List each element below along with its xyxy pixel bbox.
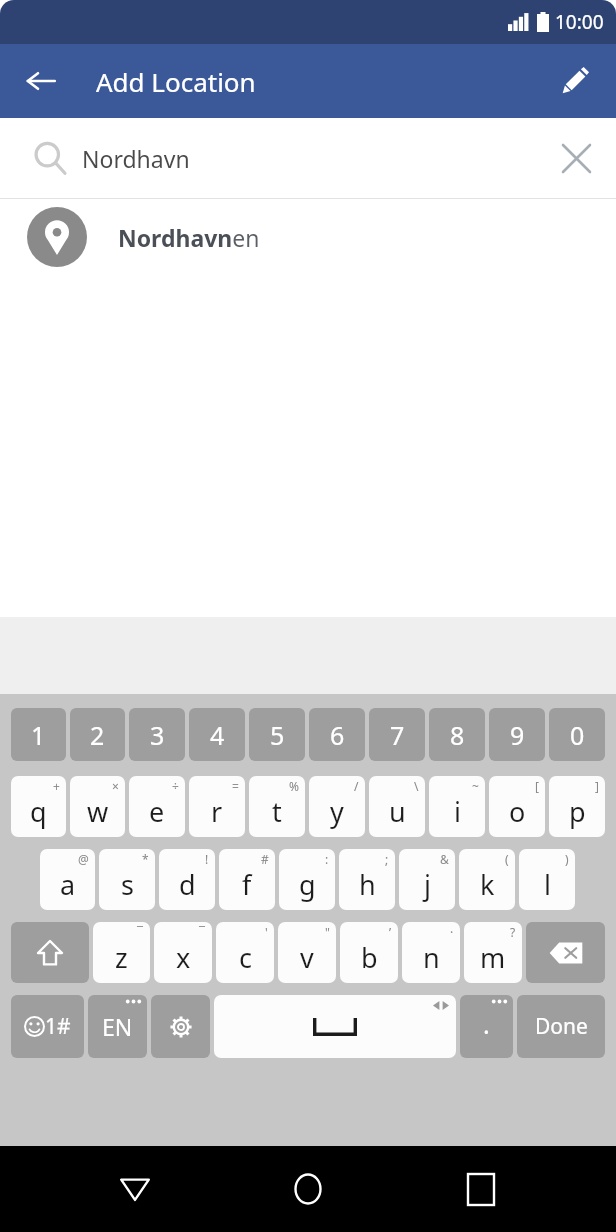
staticText: \ xyxy=(414,778,419,794)
staticText: ¯ xyxy=(199,924,206,940)
button[interactable]: ~ xyxy=(429,776,485,840)
staticText: EN xyxy=(102,1011,133,1042)
staticText: ( xyxy=(505,851,509,867)
staticText: * xyxy=(142,851,149,867)
button[interactable]: ; xyxy=(339,849,395,913)
staticText: Done xyxy=(535,1012,588,1041)
button[interactable]: Settings xyxy=(151,995,210,1061)
staticText: ) xyxy=(565,851,569,867)
staticText: . xyxy=(483,1007,490,1041)
button[interactable]: · xyxy=(402,922,460,986)
button[interactable]: 3 xyxy=(129,708,185,764)
staticText: & xyxy=(440,851,449,867)
button[interactable]: ¯ xyxy=(154,922,212,986)
staticText: Nordhavnen xyxy=(118,222,260,253)
button[interactable]: " xyxy=(278,922,336,986)
button[interactable]: 5 xyxy=(249,708,305,764)
button[interactable]: ? xyxy=(464,922,522,986)
staticText: × xyxy=(112,778,119,794)
button[interactable]: + xyxy=(11,776,66,840)
button[interactable]: ] xyxy=(549,776,605,840)
staticText: g xyxy=(299,866,316,903)
button[interactable]: ’ xyxy=(340,922,398,986)
staticText: ¯ xyxy=(137,924,144,940)
staticText: " xyxy=(325,924,330,940)
button[interactable]: % xyxy=(249,776,305,840)
button[interactable]: Back xyxy=(14,54,68,108)
button[interactable]: # xyxy=(219,849,275,913)
staticText: z xyxy=(115,939,128,976)
staticText: + xyxy=(53,778,60,794)
staticText: ; xyxy=(385,851,389,867)
button[interactable]: Home xyxy=(270,1151,346,1227)
staticText: t xyxy=(272,793,282,830)
staticText: 10:00 xyxy=(555,9,604,35)
button[interactable]: Edit xyxy=(548,54,602,108)
staticText: b xyxy=(361,939,378,976)
staticText: Nordhavn xyxy=(82,143,190,174)
staticText: h xyxy=(359,866,376,903)
staticText: : xyxy=(325,851,329,867)
button[interactable]: 7 xyxy=(369,708,425,764)
staticText: f xyxy=(242,866,252,903)
button[interactable]: Space xyxy=(214,995,456,1061)
button[interactable]: ÷ xyxy=(129,776,185,840)
button[interactable]: @ xyxy=(40,849,95,913)
button[interactable]: Shift xyxy=(11,922,89,986)
button[interactable]: Nordhavn xyxy=(0,118,616,198)
staticText: / xyxy=(354,778,359,794)
button[interactable]: 1 xyxy=(11,708,66,764)
button[interactable]: EN xyxy=(88,995,147,1061)
staticText: a xyxy=(60,866,76,903)
button[interactable]: & xyxy=(399,849,455,913)
button[interactable]: Recents xyxy=(443,1151,519,1227)
button[interactable]: Done xyxy=(517,995,605,1061)
button[interactable]: Back xyxy=(97,1151,173,1227)
staticText: m xyxy=(480,939,506,976)
button[interactable]: . xyxy=(460,995,513,1061)
staticText: ’ xyxy=(389,924,392,940)
button[interactable]: × xyxy=(70,776,125,840)
button[interactable]: 6 xyxy=(309,708,365,764)
staticText: 9 xyxy=(510,718,525,752)
staticText: r xyxy=(211,793,223,830)
button[interactable]: / xyxy=(309,776,365,840)
staticText: = xyxy=(232,778,239,794)
button[interactable]: 2 xyxy=(70,708,125,764)
staticText: n xyxy=(423,939,440,976)
staticText: 6 xyxy=(330,718,345,752)
staticText: 3 xyxy=(150,718,165,752)
staticText: j xyxy=(424,866,431,903)
staticText: 0 xyxy=(570,718,585,752)
staticText: x xyxy=(176,939,191,976)
staticText: @ xyxy=(78,851,89,867)
button[interactable]: 0 xyxy=(549,708,605,764)
button[interactable]: Emoji and symbols xyxy=(11,995,84,1061)
staticText: l xyxy=(544,866,551,903)
button[interactable]: = xyxy=(189,776,245,840)
staticText: k xyxy=(480,866,495,903)
button[interactable]: ' xyxy=(216,922,274,986)
button[interactable]: Backspace xyxy=(526,922,605,986)
staticText: 7 xyxy=(390,718,405,752)
staticText: Add Location xyxy=(96,64,256,99)
staticText: 8 xyxy=(450,718,465,752)
button[interactable]: [ xyxy=(489,776,545,840)
button[interactable]: 4 xyxy=(189,708,245,764)
staticText: 1# xyxy=(45,1012,71,1041)
button[interactable]: ¯ xyxy=(93,922,150,986)
staticText: p xyxy=(569,793,586,830)
button[interactable]: 9 xyxy=(489,708,545,764)
staticText: ? xyxy=(510,924,516,940)
button[interactable]: \ xyxy=(369,776,425,840)
button[interactable]: 8 xyxy=(429,708,485,764)
button[interactable]: ( xyxy=(459,849,515,913)
button[interactable]: * xyxy=(99,849,155,913)
staticText: 2 xyxy=(90,718,105,752)
staticText: s xyxy=(121,866,134,903)
button[interactable]: ! xyxy=(159,849,215,913)
button[interactable]: ) xyxy=(519,849,575,913)
button[interactable]: Clear xyxy=(546,128,606,188)
button[interactable]: Nordhavnen xyxy=(0,199,616,275)
button[interactable]: : xyxy=(279,849,335,913)
